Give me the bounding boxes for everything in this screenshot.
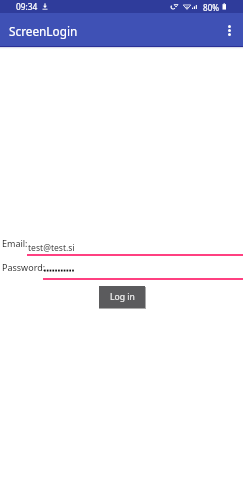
staticText: ScreenLogin <box>9 23 78 39</box>
button[interactable]: More options <box>217 13 243 47</box>
staticText: Log in <box>110 291 135 303</box>
staticText: Password: <box>2 261 46 273</box>
staticText: 09:34 <box>16 1 38 12</box>
staticText: 80% <box>203 2 219 13</box>
staticText: Email: <box>2 237 28 249</box>
button[interactable]: Log in <box>99 286 145 308</box>
staticText: test@test.si <box>28 242 75 254</box>
